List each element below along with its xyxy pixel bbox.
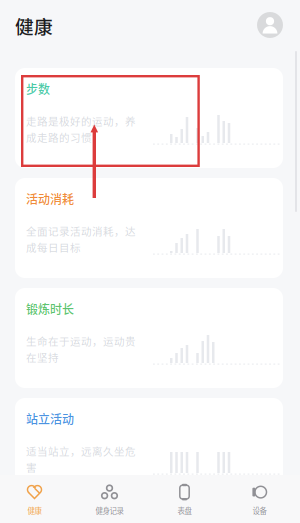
staticText: 成走路的习惯 xyxy=(26,130,92,145)
staticText: 适当站立，远离久坐危 xyxy=(26,443,136,459)
button[interactable]: 设备 xyxy=(222,475,297,523)
staticText: 健身记录 xyxy=(95,505,123,516)
button[interactable]: 健身记录 xyxy=(72,475,147,523)
staticText: 站立活动 xyxy=(26,410,74,427)
button[interactable]: 活动消耗 xyxy=(15,178,283,278)
staticText: 走路是极好的运动，养 xyxy=(26,113,136,129)
button[interactable]: 锻炼时长 xyxy=(15,288,283,388)
staticText: 锻炼时长 xyxy=(26,300,74,317)
staticText: 在坚持 xyxy=(26,350,59,365)
button[interactable]: 个人中心 xyxy=(257,12,283,38)
button[interactable]: 健康 xyxy=(0,475,72,523)
button[interactable]: 步数 xyxy=(15,68,283,168)
staticText: 活动消耗 xyxy=(26,190,74,207)
button[interactable]: 表盘 xyxy=(147,475,222,523)
staticText: 设备 xyxy=(252,505,266,516)
staticText: 表盘 xyxy=(177,505,191,516)
button[interactable]: 站立活动 xyxy=(15,398,283,498)
staticText: 步数 xyxy=(26,80,50,97)
staticText: 健康 xyxy=(15,12,53,39)
staticText: 成每日目标 xyxy=(26,240,81,255)
staticText: 全面记录活动消耗，达 xyxy=(26,223,136,239)
staticText: 害 xyxy=(26,460,37,475)
staticText: 健康 xyxy=(27,505,41,516)
staticText: 生命在于运动，运动贵 xyxy=(26,333,136,349)
